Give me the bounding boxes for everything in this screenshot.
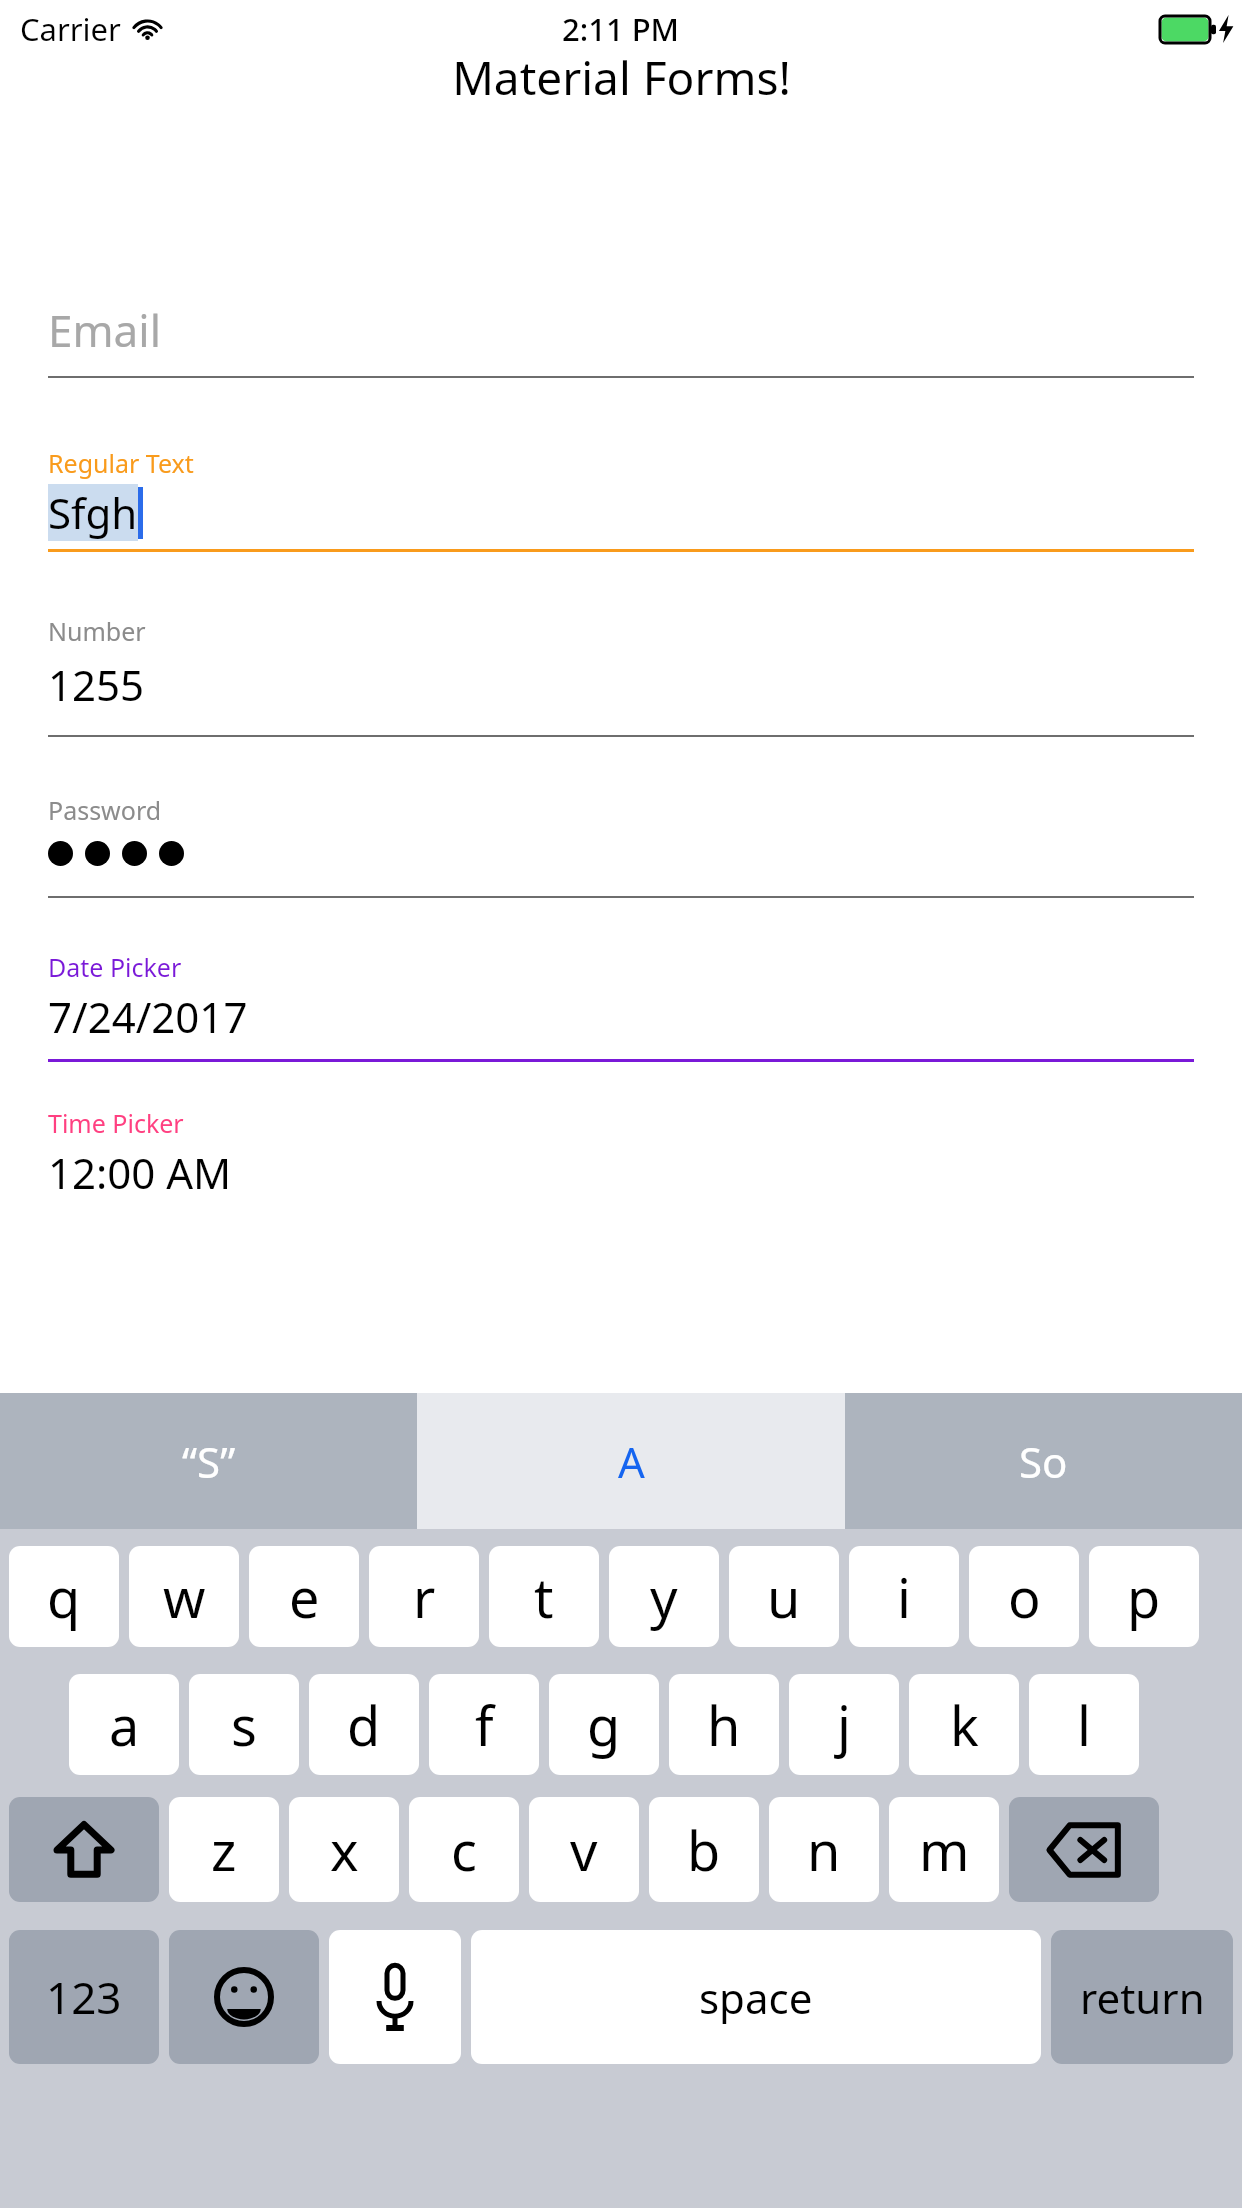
staticText: v — [570, 1813, 598, 1887]
button[interactable]: s — [189, 1674, 299, 1775]
staticText: 123 — [46, 1967, 122, 2027]
button[interactable]: m — [889, 1797, 999, 1902]
button[interactable]: v — [529, 1797, 639, 1902]
staticText: 2:11 PM — [562, 8, 680, 50]
staticText: 1255 — [48, 656, 145, 713]
staticText: p — [1127, 1560, 1161, 1634]
staticText: A — [618, 1433, 645, 1490]
button[interactable]: Number — [48, 614, 1194, 737]
button[interactable]: j — [789, 1674, 899, 1775]
staticText: c — [451, 1813, 477, 1887]
staticText: l — [1077, 1688, 1091, 1762]
staticText: u — [767, 1560, 801, 1634]
staticText: Carrier — [20, 8, 121, 50]
staticText: m — [919, 1813, 970, 1887]
button[interactable]: u — [729, 1546, 839, 1647]
button[interactable]: g — [549, 1674, 659, 1775]
button[interactable]: Time Picker — [48, 1106, 1194, 1201]
staticText: b — [687, 1813, 721, 1887]
staticText: s — [231, 1688, 257, 1762]
staticText: t — [534, 1560, 554, 1634]
staticText: z — [211, 1813, 237, 1887]
button[interactable]: Email — [48, 300, 1194, 378]
staticText: Email — [48, 300, 161, 360]
button[interactable]: z — [169, 1797, 279, 1902]
staticText: d — [347, 1688, 381, 1762]
staticText: i — [897, 1560, 911, 1634]
button[interactable]: So — [845, 1393, 1242, 1529]
staticText: h — [707, 1688, 741, 1762]
button[interactable]: c — [409, 1797, 519, 1902]
button[interactable]: y — [609, 1546, 719, 1647]
button[interactable]: h — [669, 1674, 779, 1775]
button[interactable]: Password — [48, 793, 1194, 898]
staticText: g — [587, 1688, 621, 1762]
staticText: f — [475, 1688, 494, 1762]
staticText: x — [330, 1813, 359, 1887]
staticText: return — [1080, 1969, 1205, 2026]
staticText: Time Picker — [48, 1106, 184, 1140]
button[interactable]: p — [1089, 1546, 1199, 1647]
button[interactable]: Emoji — [169, 1930, 319, 2064]
button[interactable]: i — [849, 1546, 959, 1647]
staticText: 12:00 AM — [48, 1144, 232, 1201]
button[interactable]: “S” — [0, 1393, 417, 1529]
button[interactable]: x — [289, 1797, 399, 1902]
button[interactable]: Dictation — [329, 1930, 461, 2064]
button[interactable]: t — [489, 1546, 599, 1647]
button[interactable]: l — [1029, 1674, 1139, 1775]
staticText: 7/24/2017 — [48, 988, 248, 1045]
staticText: y — [650, 1560, 678, 1634]
staticText: k — [950, 1688, 979, 1762]
staticText: So — [1019, 1433, 1068, 1490]
button[interactable]: b — [649, 1797, 759, 1902]
button[interactable]: Regular Text — [48, 446, 1194, 552]
staticText: n — [807, 1813, 841, 1887]
staticText: e — [289, 1560, 320, 1634]
staticText: a — [109, 1688, 140, 1762]
button[interactable]: k — [909, 1674, 1019, 1775]
staticText: j — [837, 1688, 851, 1762]
button[interactable]: 123 — [9, 1930, 159, 2064]
button[interactable]: o — [969, 1546, 1079, 1647]
button[interactable]: n — [769, 1797, 879, 1902]
button[interactable]: Backspace — [1009, 1797, 1159, 1902]
button[interactable]: q — [9, 1546, 119, 1647]
button[interactable]: A — [417, 1393, 845, 1529]
staticText: q — [47, 1560, 81, 1634]
staticText: space — [699, 1969, 813, 2026]
button[interactable]: space — [471, 1930, 1041, 2064]
button[interactable]: return — [1051, 1930, 1233, 2064]
button[interactable]: Shift — [9, 1797, 159, 1902]
staticText: Date Picker — [48, 950, 182, 984]
button[interactable]: Date Picker — [48, 950, 1194, 1062]
staticText: Sfgh — [48, 484, 138, 541]
button[interactable]: r — [369, 1546, 479, 1647]
staticText: Regular Text — [48, 446, 194, 480]
staticText: w — [163, 1560, 206, 1634]
staticText: o — [1008, 1560, 1041, 1634]
staticText: Material Forms! — [452, 46, 791, 109]
button[interactable]: d — [309, 1674, 419, 1775]
staticText: r — [413, 1560, 436, 1634]
button[interactable]: a — [69, 1674, 179, 1775]
button[interactable]: f — [429, 1674, 539, 1775]
staticText: Password — [48, 793, 162, 827]
button[interactable]: e — [249, 1546, 359, 1647]
staticText: “S” — [182, 1433, 236, 1490]
button[interactable]: w — [129, 1546, 239, 1647]
staticText: Number — [48, 614, 146, 648]
